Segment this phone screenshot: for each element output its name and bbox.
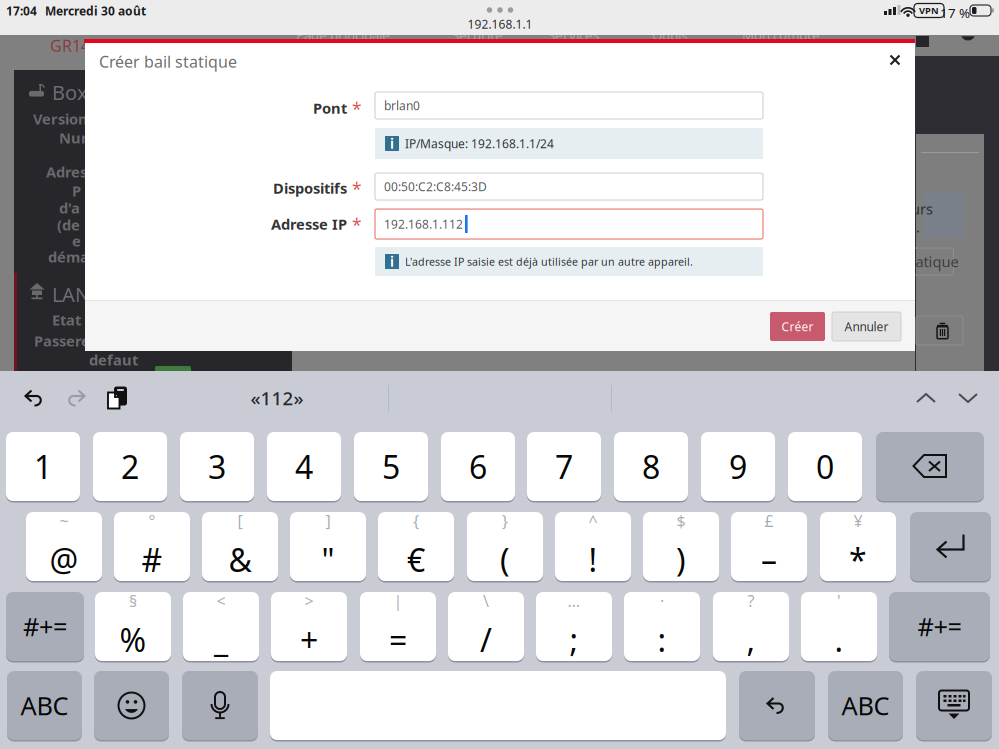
button[interactable]: 0 (0, 0, 74, 69)
button[interactable]: 3 (0, 0, 74, 69)
button[interactable]: Coller (0, 0, 34, 34)
staticText: ' (837, 590, 841, 611)
staticText: Etat (52, 310, 81, 329)
button[interactable]: 5 (0, 0, 74, 69)
staticText: _ (214, 618, 228, 661)
staticText: ¥ (853, 510, 862, 531)
staticText: Page principale (296, 26, 390, 44)
button[interactable]: ABC (0, 0, 75, 69)
staticText: * (849, 538, 867, 581)
button[interactable]: Retour (0, 0, 81, 69)
staticText: { (413, 510, 419, 531)
button[interactable]: Champ précédent (0, 0, 34, 34)
staticText: (de (57, 215, 80, 234)
staticText: ° (148, 510, 155, 531)
staticText: ABC (20, 689, 68, 722)
staticText: ~ (59, 510, 68, 531)
button[interactable]: · (0, 0, 76, 69)
button[interactable]: Annuler (0, 0, 69, 29)
staticText: ( (500, 538, 510, 581)
staticText: + (300, 618, 318, 661)
button[interactable]: … (0, 0, 76, 69)
staticText: Sécurité (452, 26, 503, 44)
staticText: Annuler (844, 318, 888, 334)
button[interactable]: [ (0, 0, 76, 69)
staticText: Passere (34, 331, 90, 350)
staticText: Version (33, 109, 88, 128)
staticText: * (352, 177, 362, 200)
staticText: déma (48, 247, 89, 266)
staticText: LAN (52, 281, 90, 308)
button[interactable]: ? (0, 0, 76, 69)
button[interactable]: Dictée (0, 0, 76, 69)
button[interactable] (0, 0, 456, 69)
staticText: > (304, 590, 313, 611)
staticText: 17:04 (6, 3, 37, 19)
button[interactable]: < (0, 0, 76, 69)
staticText: GR140IG (50, 35, 116, 56)
staticText: P (72, 181, 81, 200)
button[interactable]: Annuler (0, 0, 76, 69)
button[interactable]: Rétablir (0, 0, 34, 34)
button[interactable]: ¥ (0, 0, 76, 69)
staticText: 00:50:C2:C8:45:3D (384, 178, 487, 194)
staticText: } (502, 510, 508, 531)
staticText: «112» (250, 386, 303, 410)
button[interactable]: § (0, 0, 76, 69)
button[interactable]: Annuler la frappe (0, 0, 34, 34)
button[interactable]: \ (0, 0, 76, 69)
button[interactable]: 9 (0, 0, 74, 69)
staticText: * (352, 213, 362, 236)
button[interactable]: 8 (0, 0, 74, 69)
button[interactable]: «112» (0, 0, 110, 34)
button[interactable]: > (0, 0, 76, 69)
button[interactable]: ° (0, 0, 76, 69)
button[interactable]: Masquer le clavier (0, 0, 76, 69)
staticText: / (480, 618, 492, 661)
button[interactable]: $ (0, 0, 76, 69)
button[interactable]: 6 (0, 0, 74, 69)
staticText: IP/Masque: 192.168.1.1/24 (405, 135, 554, 151)
staticText: #+= (917, 610, 961, 643)
staticText: 7 (555, 445, 573, 488)
staticText: 9 (729, 445, 747, 488)
staticText: – (761, 538, 777, 581)
button[interactable]: 1 (0, 0, 74, 69)
button[interactable]: ~ (0, 0, 76, 69)
button[interactable]: ] (0, 0, 76, 69)
staticText: @ (49, 538, 78, 581)
staticText: Box (52, 79, 88, 106)
button[interactable]: ' (0, 0, 76, 69)
button[interactable]: ^ (0, 0, 76, 69)
button[interactable]: | (0, 0, 76, 69)
staticText: 4 (295, 445, 313, 488)
button[interactable]: Créer (0, 0, 55, 29)
staticText: , (746, 618, 755, 661)
button[interactable]: Supprimer (0, 0, 108, 69)
staticText: : (657, 618, 666, 661)
staticText: ) (676, 538, 686, 581)
staticText: £ (764, 510, 773, 531)
staticText: d'a (59, 198, 80, 217)
button[interactable]: } (0, 0, 76, 69)
button[interactable]: Emoji (0, 0, 75, 69)
staticText: · (660, 590, 664, 611)
staticText: € (407, 538, 425, 581)
button[interactable]: 4 (0, 0, 74, 69)
button[interactable]: #+= (0, 0, 78, 69)
staticText: < (216, 590, 225, 611)
staticText: Pont (313, 98, 347, 118)
button[interactable]: 7 (0, 0, 74, 69)
button[interactable]: ABC (0, 0, 75, 69)
button[interactable]: £ (0, 0, 76, 69)
staticText: $ (676, 510, 685, 531)
button[interactable]: #+= (0, 0, 101, 69)
staticText: ABC (841, 689, 889, 722)
staticText: # (141, 538, 162, 581)
button[interactable]: { (0, 0, 76, 69)
staticText: #+= (23, 610, 67, 643)
button[interactable]: Fermer (0, 0, 30, 30)
button[interactable]: Champ suivant (0, 0, 34, 34)
staticText: Créer bail statique (99, 51, 237, 72)
button[interactable]: 2 (0, 0, 74, 69)
